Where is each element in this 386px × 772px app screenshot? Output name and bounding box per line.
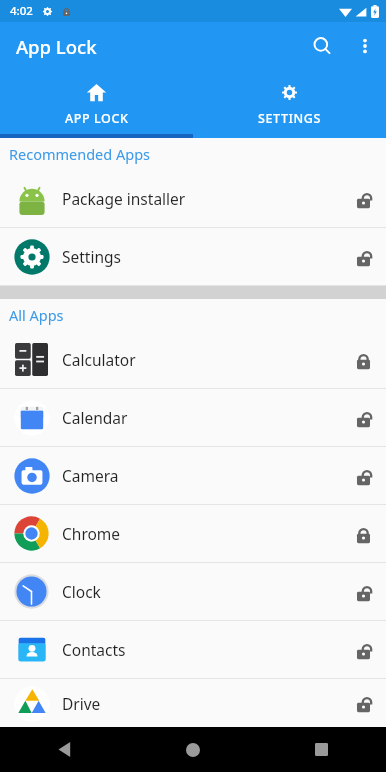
- staticText: Recommended Apps: [9, 144, 151, 164]
- button[interactable]: Lock Calendar: [340, 395, 386, 441]
- staticText: All Apps: [9, 305, 64, 325]
- button[interactable]: SETTINGS: [193, 70, 386, 138]
- button[interactable]: More options: [344, 25, 386, 67]
- button[interactable]: APP LOCK: [0, 70, 193, 138]
- button[interactable]: Lock Drive: [340, 680, 386, 726]
- button[interactable]: Calendar: [0, 389, 386, 446]
- button[interactable]: Lock Contacts: [340, 627, 386, 673]
- staticText: Calendar: [62, 407, 340, 428]
- staticText: APP LOCK: [65, 110, 129, 127]
- button[interactable]: Lock Package installer: [340, 176, 386, 222]
- button[interactable]: Lock Settings: [340, 234, 386, 280]
- staticText: Drive: [62, 693, 340, 714]
- button[interactable]: Clock: [0, 563, 386, 620]
- button[interactable]: Recent apps: [257, 727, 386, 772]
- staticText: Chrome: [62, 523, 340, 544]
- button[interactable]: Chrome: [0, 505, 386, 562]
- button[interactable]: Unlock Chrome: [340, 511, 386, 557]
- button[interactable]: Home: [128, 727, 257, 772]
- button[interactable]: Drive: [0, 679, 386, 727]
- staticText: Camera: [62, 465, 340, 486]
- button[interactable]: Contacts: [0, 621, 386, 678]
- button[interactable]: Unlock Calculator: [340, 337, 386, 383]
- button[interactable]: Back: [0, 727, 128, 772]
- button[interactable]: Calculator: [0, 331, 386, 388]
- staticText: App Lock: [16, 34, 97, 59]
- button[interactable]: Lock Camera: [340, 453, 386, 499]
- button[interactable]: Lock Clock: [340, 569, 386, 615]
- button[interactable]: Package installer: [0, 170, 386, 227]
- staticText: 4:02: [10, 3, 33, 19]
- button[interactable]: Search: [300, 24, 344, 68]
- staticText: Calculator: [62, 349, 340, 370]
- staticText: Package installer: [62, 188, 340, 209]
- staticText: Settings: [62, 246, 340, 267]
- staticText: Clock: [62, 581, 340, 602]
- button[interactable]: Camera: [0, 447, 386, 504]
- button[interactable]: Settings: [0, 228, 386, 285]
- staticText: Contacts: [62, 639, 340, 660]
- staticText: SETTINGS: [258, 110, 322, 127]
